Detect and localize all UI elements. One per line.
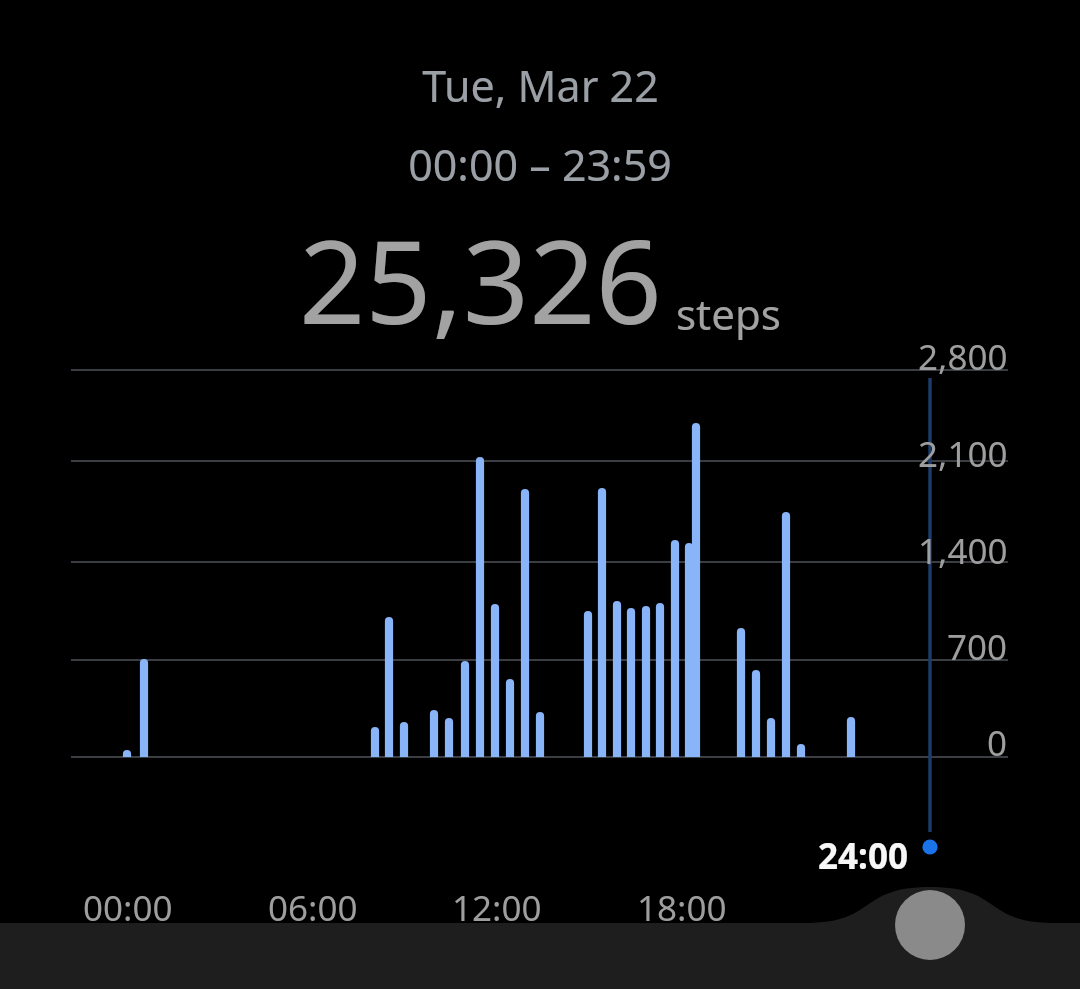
staticText: steps [676,285,781,342]
staticText: 24:00 [818,832,908,880]
staticText: 00:00 [83,884,173,932]
staticText: 25,326 [299,200,662,358]
staticText: 700 [947,623,1008,671]
button[interactable]: Drag time range handle [890,885,970,965]
staticText: 12:00 [452,884,542,932]
staticText: 00:00 – 23:59 [408,135,672,194]
staticText: 1,400 [918,527,1008,575]
staticText: 06:00 [268,884,358,932]
staticText: 2,800 [918,333,1008,381]
staticText: 2,100 [918,430,1008,478]
staticText: Tue, Mar 22 [422,56,659,115]
staticText: 0 [987,719,1008,767]
staticText: 18:00 [637,884,727,932]
